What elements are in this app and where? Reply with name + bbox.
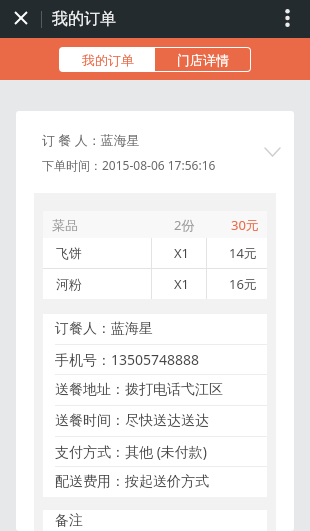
button[interactable]: Expand: [260, 140, 284, 164]
staticText: 支付方式：其他 (未付款): [55, 442, 208, 461]
button[interactable]: More options: [264, 0, 310, 38]
staticText: 14元: [229, 244, 257, 262]
staticText: 菜品: [52, 217, 78, 233]
staticText: 手机号：13505748888: [55, 350, 200, 369]
button[interactable]: 送餐时间：尽快送达送达: [43, 406, 267, 436]
staticText: 送餐地址：拨打电话弋江区: [55, 381, 223, 399]
staticText: 门店详情: [177, 52, 229, 68]
staticText: 30元: [231, 216, 259, 234]
staticText: 2份: [174, 216, 195, 234]
staticText: 订 餐 人：蓝海星: [42, 131, 140, 149]
button[interactable]: 送餐地址：拨打电话弋江区: [43, 375, 267, 405]
button[interactable]: 订餐人：蓝海星: [43, 314, 267, 344]
staticText: 我的订单: [52, 9, 116, 29]
staticText: 订餐人：蓝海星: [55, 320, 153, 338]
staticText: 配送费用：按起送价方式: [55, 473, 209, 491]
staticText: X1: [174, 244, 190, 262]
staticText: 飞饼: [56, 245, 82, 261]
button[interactable]: 配送费用：按起送价方式: [43, 467, 267, 497]
button[interactable]: 我的订单: [60, 48, 155, 71]
staticText: 下单时间：2015-08-06 17:56:16: [42, 157, 216, 173]
staticText: 备注: [55, 512, 83, 530]
button[interactable]: 手机号：13505748888: [43, 345, 267, 374]
button[interactable]: Close: [0, 0, 41, 38]
staticText: 16元: [229, 275, 257, 293]
staticText: 河粉: [56, 276, 82, 292]
staticText: 我的订单: [82, 52, 134, 68]
staticText: X1: [174, 275, 190, 293]
staticText: 送餐时间：尽快送达送达: [55, 412, 209, 430]
button[interactable]: 门店详情: [155, 48, 250, 71]
button[interactable]: 支付方式：其他 (未付款): [43, 437, 267, 466]
